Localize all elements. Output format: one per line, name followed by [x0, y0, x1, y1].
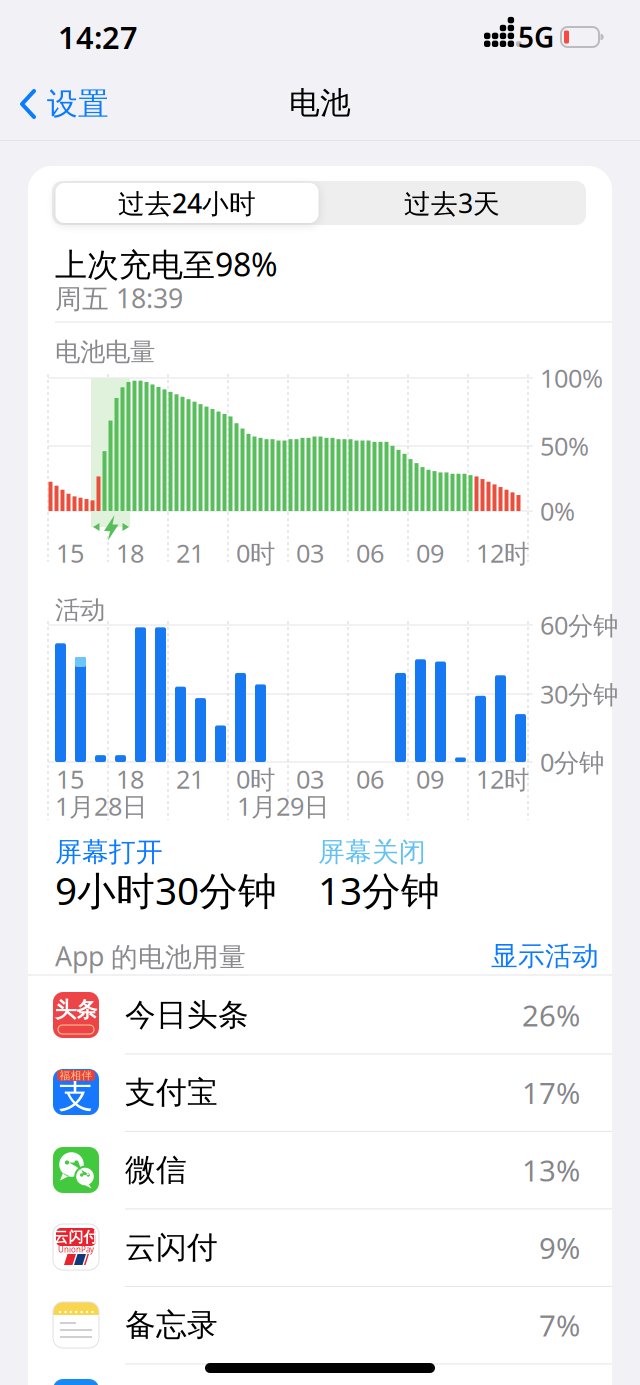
staticText: 21 — [176, 762, 204, 796]
staticText: 周五 18:39 — [55, 280, 183, 316]
staticText: 7% — [539, 1305, 580, 1344]
staticText: 0% — [540, 494, 575, 528]
button[interactable]: 过去24小时 — [55, 183, 318, 223]
staticText: 06 — [356, 536, 384, 570]
staticText: 09 — [416, 536, 444, 570]
staticText: 18 — [116, 762, 144, 796]
staticText: 12时 — [476, 536, 529, 570]
staticText: 21 — [176, 536, 204, 570]
staticText: 云闪付 — [53, 1228, 98, 1246]
button[interactable]: 设置 — [20, 79, 130, 129]
staticText: 60分钟 — [540, 608, 618, 642]
staticText: 1月29日 — [237, 789, 329, 823]
button[interactable]: 显示活动 — [491, 940, 599, 972]
staticText: 过去3天 — [404, 185, 500, 221]
staticText: 云闪付 — [125, 1229, 218, 1266]
staticText: UnionPay — [58, 1244, 94, 1255]
staticText: 支付宝 — [125, 1074, 218, 1111]
staticText: 支 — [58, 1075, 93, 1117]
staticText: 26% — [522, 995, 580, 1034]
staticText: 03 — [296, 762, 324, 796]
staticText: 18 — [116, 536, 144, 570]
staticText: 30分钟 — [540, 677, 618, 711]
staticText: 1月28日 — [55, 789, 147, 823]
button[interactable]: 云闪付 — [28, 1209, 612, 1286]
staticText: App 的电池用量 — [55, 938, 246, 974]
button[interactable]: 备忘录 — [28, 1286, 612, 1363]
staticText: 备忘录 — [125, 1306, 218, 1344]
staticText: 福相伴 — [59, 1069, 92, 1082]
staticText: 头条 — [55, 997, 97, 1023]
staticText: 12时 — [476, 762, 529, 796]
staticText: 活动 — [55, 594, 105, 625]
button[interactable]: 微信 — [28, 1131, 612, 1208]
staticText: 显示活动 — [491, 940, 599, 972]
button[interactable]: 过去3天 — [320, 183, 583, 223]
staticText: 03 — [296, 536, 324, 570]
staticText: 15 — [56, 536, 84, 570]
staticText: 微信 — [125, 1151, 187, 1189]
staticText: 今日头条 — [125, 996, 249, 1034]
staticText: 15 — [56, 762, 84, 796]
staticText: 09 — [416, 762, 444, 796]
staticText: 0分钟 — [540, 745, 604, 779]
staticText: 屏幕关闭 — [318, 836, 426, 868]
staticText: 设置 — [47, 85, 109, 123]
button[interactable]: 今日头条 — [28, 976, 612, 1053]
staticText: 9% — [539, 1228, 580, 1267]
staticText: 06 — [356, 762, 384, 796]
staticText: 13分钟 — [318, 864, 440, 916]
staticText: 0时 — [236, 536, 275, 570]
staticText: 电池电量 — [55, 336, 155, 367]
staticText: 电池 — [289, 84, 351, 122]
staticText: 屏幕打开 — [55, 836, 163, 868]
button[interactable]: 支付宝 — [28, 1054, 612, 1131]
staticText: 上次充电至98% — [55, 243, 278, 285]
staticText: 50% — [540, 429, 589, 463]
staticText: 过去24小时 — [118, 185, 256, 221]
staticText: 0时 — [236, 762, 275, 796]
staticText: 100% — [540, 361, 603, 395]
staticText: 14:27 — [58, 17, 138, 57]
staticText: 5G — [518, 18, 554, 56]
staticText: 17% — [522, 1073, 580, 1112]
staticText: 13% — [522, 1150, 580, 1189]
staticText: 9小时30分钟 — [55, 864, 277, 916]
